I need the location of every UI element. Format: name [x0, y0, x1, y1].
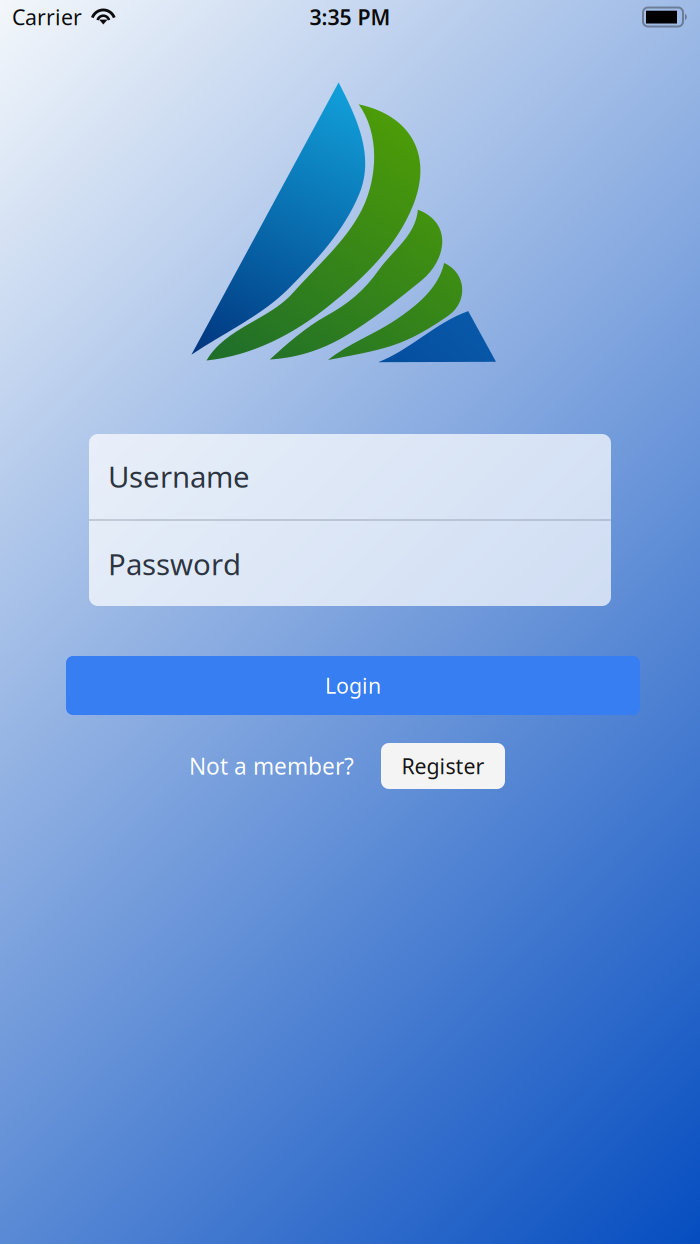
staticText: 3:35 PM — [309, 3, 390, 31]
staticText: Register — [401, 752, 484, 780]
button[interactable]: Register — [381, 743, 505, 789]
button[interactable]: Password — [89, 521, 611, 607]
staticText: Login — [325, 671, 381, 700]
button[interactable]: Username — [89, 433, 611, 519]
staticText: Not a member? — [189, 751, 354, 781]
staticText: Username — [108, 457, 250, 496]
button[interactable]: Login — [66, 656, 640, 715]
staticText: Carrier — [12, 3, 82, 31]
staticText: Password — [108, 544, 241, 583]
